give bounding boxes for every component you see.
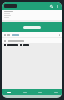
button[interactable]: Explore [21,89,28,95]
button[interactable] [2,38,62,43]
button[interactable]: Activity [36,89,43,95]
button[interactable] [23,26,41,29]
button[interactable] [4,4,17,8]
button[interactable] [7,44,18,46]
button[interactable]: Search [49,4,54,9]
button[interactable] [2,10,62,20]
button[interactable]: Home [5,89,12,95]
button[interactable]: Profile [52,89,59,95]
button[interactable] [2,32,62,37]
button[interactable] [23,44,29,46]
button[interactable]: More options [55,4,60,9]
